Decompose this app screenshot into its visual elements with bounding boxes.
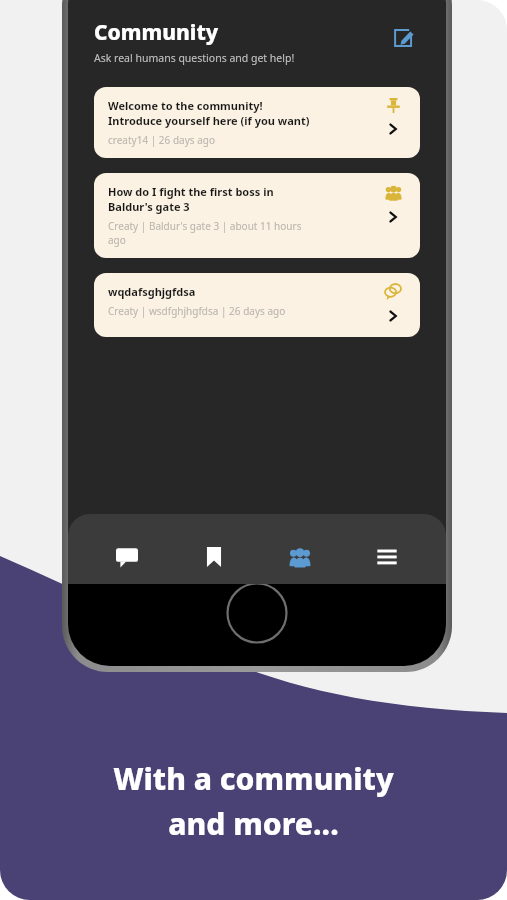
button[interactable]: How do I fight the first boss in [94,173,420,258]
staticText: With a community [113,758,394,799]
staticText: Creaty | wsdfghjhgfdsa | 26 days ago [108,304,286,318]
button[interactable]: Saved [186,540,242,574]
staticText: ago [108,233,126,247]
staticText: Creaty | Baldur's gate 3 | about 11 hour… [108,219,302,233]
staticText: Introduce yourself here (if you want) [108,113,310,128]
button[interactable]: wqdafsghjgfdsa [94,273,420,337]
staticText: Ask real humans questions and get help! [94,51,295,65]
button[interactable]: Welcome to the community! [94,87,420,158]
staticText: creaty14 | 26 days ago [108,133,215,147]
staticText: and more... [168,803,339,844]
staticText: wqdafsghjgfdsa [108,284,196,299]
button[interactable]: Compose new post [386,20,420,54]
button[interactable]: Messages [99,540,155,574]
staticText: How do I fight the first boss in [108,184,274,199]
staticText: Community [94,18,219,47]
button[interactable]: Community [272,540,328,574]
staticText: Baldur's gate 3 [108,199,190,214]
button[interactable]: Menu [359,540,415,574]
staticText: Welcome to the community! [108,98,263,113]
